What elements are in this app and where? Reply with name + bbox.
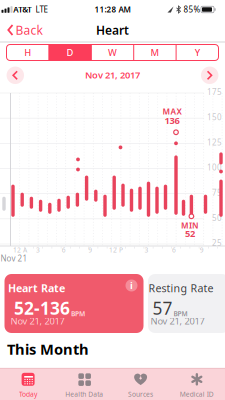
- staticText: D: [67, 46, 74, 59]
- staticText: 3: [36, 246, 40, 254]
- staticText: 12 A: [13, 246, 27, 254]
- staticText: Nov 21, 2017: [150, 315, 204, 327]
- staticText: Today: [19, 390, 37, 399]
- button[interactable]: H: [7, 44, 49, 60]
- staticText: 100: [207, 162, 222, 173]
- staticText: AT&T: [13, 4, 32, 15]
- staticText: 75: [212, 187, 222, 198]
- staticText: 6: [172, 246, 176, 254]
- staticText: 52: [185, 227, 195, 240]
- staticText: 136: [164, 114, 179, 127]
- staticText: 57: [152, 296, 172, 319]
- button[interactable]: Health Data: [56, 370, 112, 400]
- button[interactable]: Back: [6, 19, 44, 41]
- staticText: Sources: [128, 390, 153, 399]
- staticText: Heart: [96, 22, 129, 38]
- staticText: BPM: [173, 309, 187, 318]
- staticText: 25: [212, 238, 222, 248]
- staticText: 12 P: [109, 246, 123, 254]
- button[interactable]: Resting Rate: [148, 274, 225, 333]
- staticText: 175: [207, 87, 222, 97]
- button[interactable]: Y: [176, 44, 218, 60]
- staticText: Resting Rate: [148, 281, 213, 295]
- staticText: H: [24, 46, 31, 59]
- staticText: 11:28 AM: [94, 4, 130, 15]
- staticText: W: [108, 46, 117, 59]
- staticText: 9: [88, 246, 92, 254]
- staticText: Nov 21, 2017: [10, 315, 64, 327]
- staticText: Medical ID: [180, 390, 214, 399]
- staticText: 50: [212, 212, 222, 223]
- button[interactable]: Previous day: [7, 66, 24, 84]
- button[interactable]: W: [91, 44, 133, 60]
- staticText: 3: [144, 246, 148, 254]
- staticText: BPM: [71, 309, 85, 318]
- button[interactable]: Heart Rate: [4, 274, 143, 333]
- staticText: 9: [200, 246, 204, 254]
- button[interactable]: Sources: [113, 370, 169, 400]
- staticText: MAX: [162, 106, 181, 117]
- staticText: 150: [207, 112, 222, 122]
- button[interactable]: Today: [0, 370, 56, 400]
- staticText: Heart Rate: [8, 281, 65, 295]
- staticText: Health Data: [65, 390, 103, 399]
- staticText: 6: [62, 246, 66, 254]
- staticText: Nov 21: [0, 253, 27, 264]
- button[interactable]: Next day: [201, 66, 218, 84]
- button[interactable]: M: [134, 44, 176, 60]
- staticText: Nov 21, 2017: [85, 69, 140, 81]
- staticText: LTE: [35, 4, 47, 15]
- staticText: 85%: [183, 4, 200, 15]
- staticText: 52-136: [14, 296, 70, 319]
- staticText: 125: [207, 137, 222, 148]
- button[interactable]: Medical ID: [169, 370, 225, 400]
- staticText: Back: [15, 22, 42, 38]
- button[interactable]: More information: [125, 279, 137, 291]
- staticText: Y: [195, 46, 200, 59]
- staticText: MIN: [181, 220, 199, 231]
- staticText: i: [130, 279, 133, 292]
- staticText: M: [150, 46, 159, 59]
- button[interactable]: D: [49, 44, 91, 60]
- staticText: This Month: [7, 339, 89, 359]
